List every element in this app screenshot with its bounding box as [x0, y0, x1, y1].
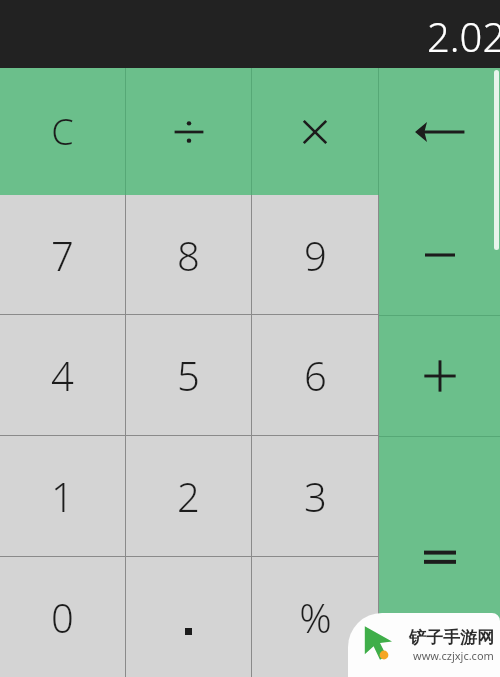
button[interactable]: 9 — [252, 195, 378, 314]
button[interactable]: Equals — [379, 437, 500, 677]
staticText: www.czjxjc.com — [413, 648, 494, 663]
button[interactable]: C — [0, 68, 125, 195]
button[interactable] — [126, 557, 251, 677]
button[interactable]: 4 — [0, 315, 125, 435]
button[interactable]: Plus — [379, 316, 500, 436]
staticText: 3 — [304, 469, 327, 523]
staticText: 7 — [51, 228, 74, 282]
staticText: 2 — [177, 469, 200, 523]
staticText: 1 — [51, 469, 74, 523]
staticText: 4 — [51, 348, 74, 402]
button[interactable]: 1 — [0, 436, 125, 556]
button[interactable]: Multiply — [252, 68, 378, 195]
staticText: % — [299, 590, 332, 644]
staticText: C — [51, 107, 74, 156]
staticText: 5 — [177, 348, 200, 402]
button[interactable]: 3 — [252, 436, 378, 556]
staticText: 8 — [177, 228, 200, 282]
staticText: 铲子手游网 — [409, 627, 494, 648]
button[interactable]: 8 — [126, 195, 251, 314]
button[interactable]: 5 — [126, 315, 251, 435]
button[interactable]: 0 — [0, 557, 125, 677]
button[interactable]: 7 — [0, 195, 125, 314]
staticText: 0 — [51, 590, 74, 644]
staticText: 6 — [304, 348, 327, 402]
button[interactable]: Backspace — [379, 68, 500, 195]
button[interactable]: 2 — [126, 436, 251, 556]
staticText: 2.02 — [427, 9, 500, 63]
button[interactable]: Divide — [126, 68, 251, 195]
button[interactable]: Minus — [379, 195, 500, 315]
button[interactable]: 6 — [252, 315, 378, 435]
button[interactable]: % — [252, 557, 378, 677]
staticText: 9 — [304, 228, 327, 282]
